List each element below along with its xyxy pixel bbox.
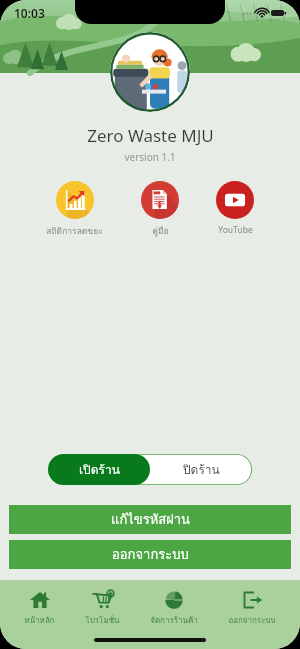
button[interactable]: จัดการร้านค้า <box>144 587 204 629</box>
button[interactable]: ออกจากระบบ <box>9 540 291 569</box>
staticText: version 1.1 <box>124 150 176 164</box>
staticText: YouTube <box>218 224 253 236</box>
button[interactable]: ออกจากระบบ <box>222 587 282 629</box>
staticText: เปิดร้าน <box>79 460 120 479</box>
staticText: Zero Waste MJU <box>87 124 214 147</box>
staticText: ปิดร้าน <box>183 460 220 479</box>
staticText: 10:03 <box>14 5 45 21</box>
staticText: สถิติการลดขยะ <box>46 224 103 238</box>
button[interactable]: โปรโมชั่น <box>79 587 126 629</box>
button[interactable]: หน้าหลัก <box>18 587 61 629</box>
button[interactable]: Waste reduction statistics <box>44 181 105 238</box>
staticText: คู่มือ <box>152 224 169 238</box>
button[interactable]: YouTube <box>214 181 256 236</box>
button[interactable]: แก้ไขรหัสผ่าน <box>9 505 291 534</box>
staticText: ออกจากระบบ <box>228 614 276 627</box>
staticText: โปรโมชั่น <box>85 614 120 627</box>
staticText: แก้ไขรหัสผ่าน <box>111 509 190 530</box>
button[interactable]: Manual PDF <box>139 181 181 238</box>
staticText: หน้าหลัก <box>24 614 55 627</box>
staticText: จัดการร้านค้า <box>150 614 198 627</box>
button[interactable]: เปิดร้าน <box>48 454 150 485</box>
staticText: ออกจากระบบ <box>112 544 189 565</box>
button[interactable]: ปิดร้าน <box>150 454 252 485</box>
